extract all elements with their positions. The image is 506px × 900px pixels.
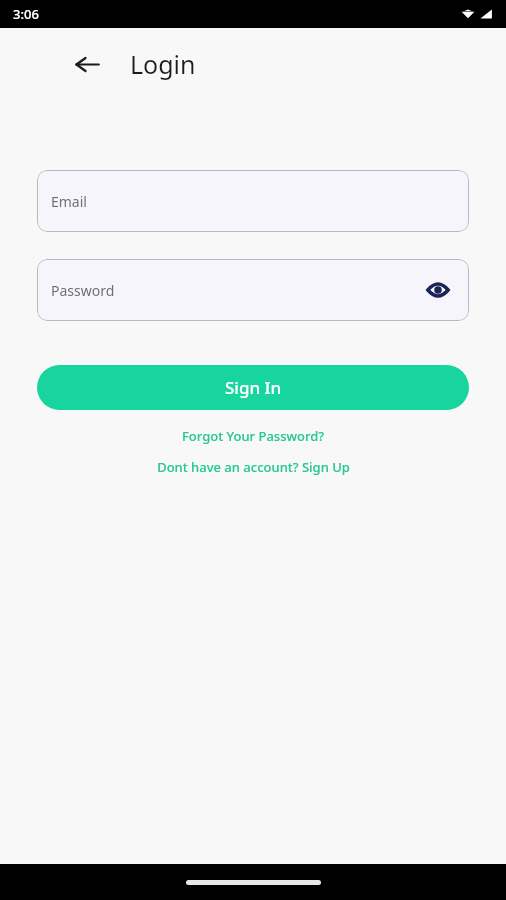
staticText: Forgot Your Password?: [182, 427, 324, 445]
button[interactable]: Dont have an account? Sign Up: [0, 458, 506, 476]
staticText: Login: [130, 47, 196, 81]
staticText: Email: [51, 192, 87, 211]
button[interactable]: Password: [37, 259, 469, 321]
staticText: Sign In: [225, 376, 282, 399]
button[interactable]: Email: [37, 170, 469, 232]
staticText: 3:06: [13, 5, 39, 23]
button[interactable]: Forgot Your Password?: [0, 427, 506, 445]
button[interactable]: Show password: [425, 277, 451, 303]
staticText: Dont have an account? Sign Up: [157, 458, 350, 476]
staticText: Password: [51, 281, 115, 300]
button[interactable]: Back: [64, 41, 110, 87]
button[interactable]: Sign In: [37, 365, 469, 410]
